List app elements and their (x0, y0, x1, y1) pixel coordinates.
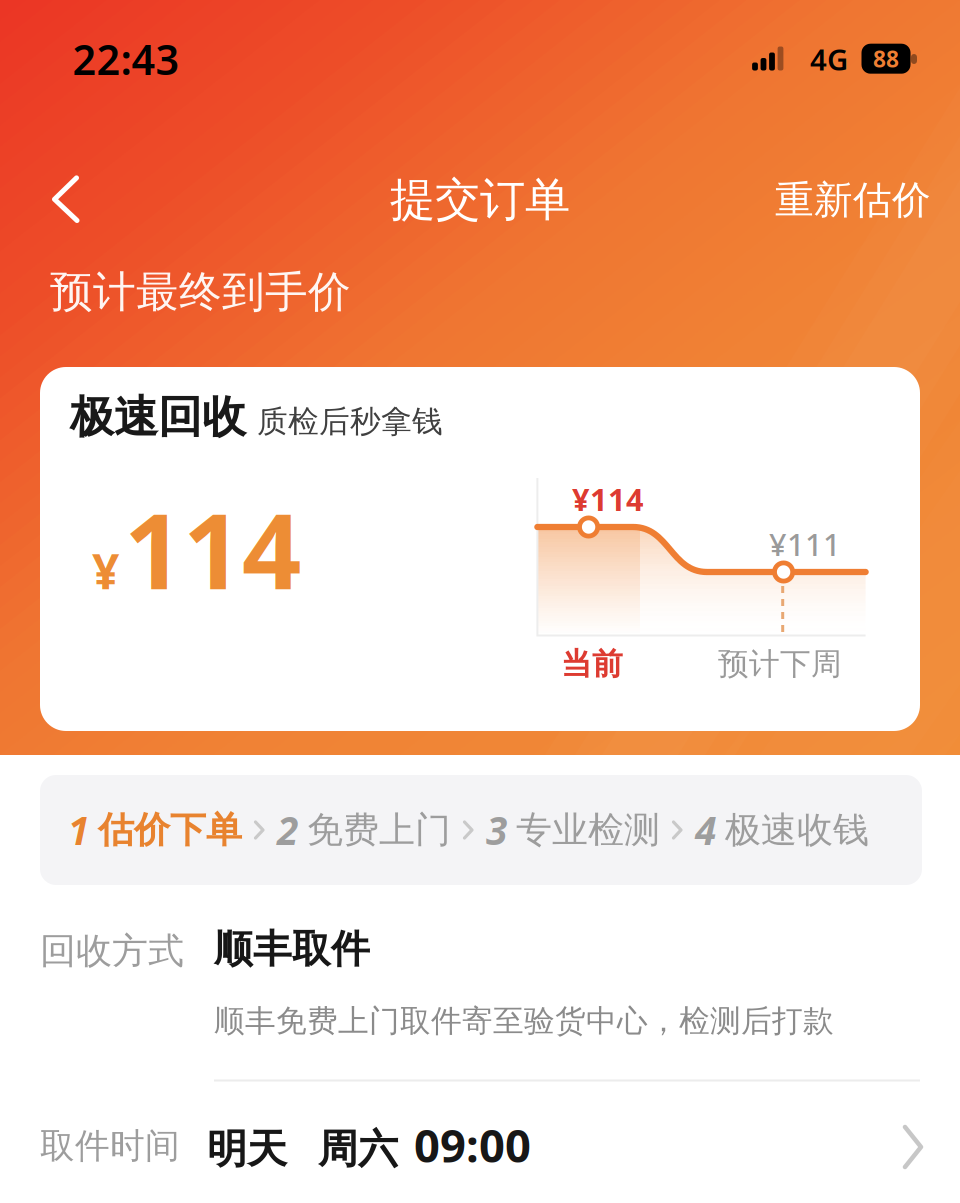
staticText: 质检后秒拿钱 (257, 403, 443, 440)
staticText: 当前 (561, 645, 623, 683)
staticText: 估价下单 (98, 808, 242, 852)
staticText: 4 (695, 804, 716, 856)
staticText: ¥114 (572, 479, 644, 519)
staticText: 22:43 (72, 32, 179, 86)
staticText: 1 (68, 804, 89, 856)
button[interactable]: 取件时间 (0, 1110, 960, 1186)
staticText: 极速收钱 (725, 808, 869, 852)
staticText: 114 (124, 480, 301, 618)
staticText: 回收方式 (40, 929, 184, 973)
staticText: ¥111 (769, 524, 841, 564)
staticText: 2 (277, 804, 298, 856)
staticText: 重新估价 (775, 176, 931, 224)
staticText: 专业检测 (516, 808, 660, 852)
staticText: 周六 (318, 1125, 398, 1174)
staticText: 提交订单 (390, 172, 570, 228)
staticText: ¥ (92, 539, 119, 603)
staticText: 88 (873, 44, 899, 74)
staticText: 预计下周 (718, 645, 842, 683)
staticText: 免费上门 (307, 808, 451, 852)
button[interactable]: 重新估价 (775, 176, 931, 224)
staticText: 4G (810, 39, 848, 78)
staticText: 3 (486, 804, 507, 856)
staticText: 顺丰取件 (214, 925, 370, 973)
staticText: 取件时间 (40, 1125, 180, 1167)
staticText: 明天 (207, 1125, 287, 1174)
staticText: 极速回收 (70, 390, 246, 444)
button[interactable]: 返回 (51, 175, 80, 224)
staticText: 09:00 (414, 1115, 531, 1175)
staticText: 预计最终到手价 (50, 266, 351, 318)
staticText: 顺丰免费上门取件寄至验货中心，检测后打款 (214, 1002, 834, 1040)
